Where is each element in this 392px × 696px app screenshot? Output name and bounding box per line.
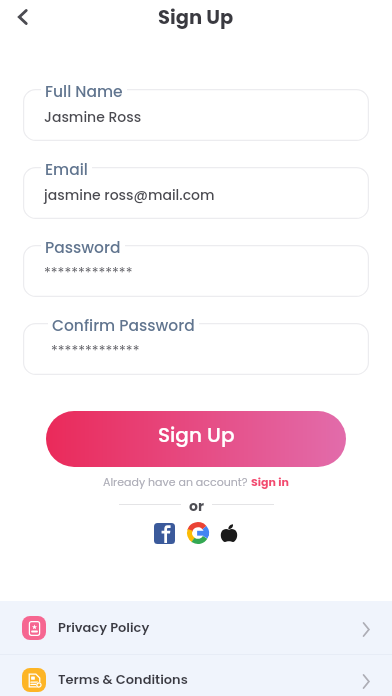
staticText: Sign in — [251, 474, 289, 489]
button[interactable]: Sign up with Apple — [220, 524, 238, 542]
staticText: Email — [45, 159, 88, 181]
staticText: Privacy Policy — [58, 618, 150, 636]
button[interactable]: Sign Up — [46, 411, 346, 467]
button[interactable]: Back — [8, 2, 38, 32]
staticText: jasmine ross@mail.com — [44, 185, 215, 205]
staticText: ************* — [51, 341, 140, 361]
staticText: ************* — [44, 263, 133, 283]
button[interactable]: Sign up with Google — [187, 522, 209, 544]
staticText: Already have an account? — [103, 474, 251, 489]
button[interactable]: Sign in — [251, 474, 289, 489]
staticText: Password — [45, 237, 121, 259]
staticText: Full Name — [45, 81, 123, 103]
button[interactable]: Privacy Policy — [0, 601, 392, 654]
staticText: Sign Up — [158, 4, 234, 31]
staticText: Terms & Conditions — [58, 670, 188, 688]
staticText: or — [189, 496, 204, 513]
staticText: Confirm Password — [52, 315, 195, 337]
staticText: Jasmine Ross — [44, 107, 142, 127]
button[interactable]: Terms & Conditions — [0, 653, 392, 696]
button[interactable]: Sign up with Facebook — [154, 523, 175, 544]
staticText: Sign Up — [158, 421, 235, 449]
